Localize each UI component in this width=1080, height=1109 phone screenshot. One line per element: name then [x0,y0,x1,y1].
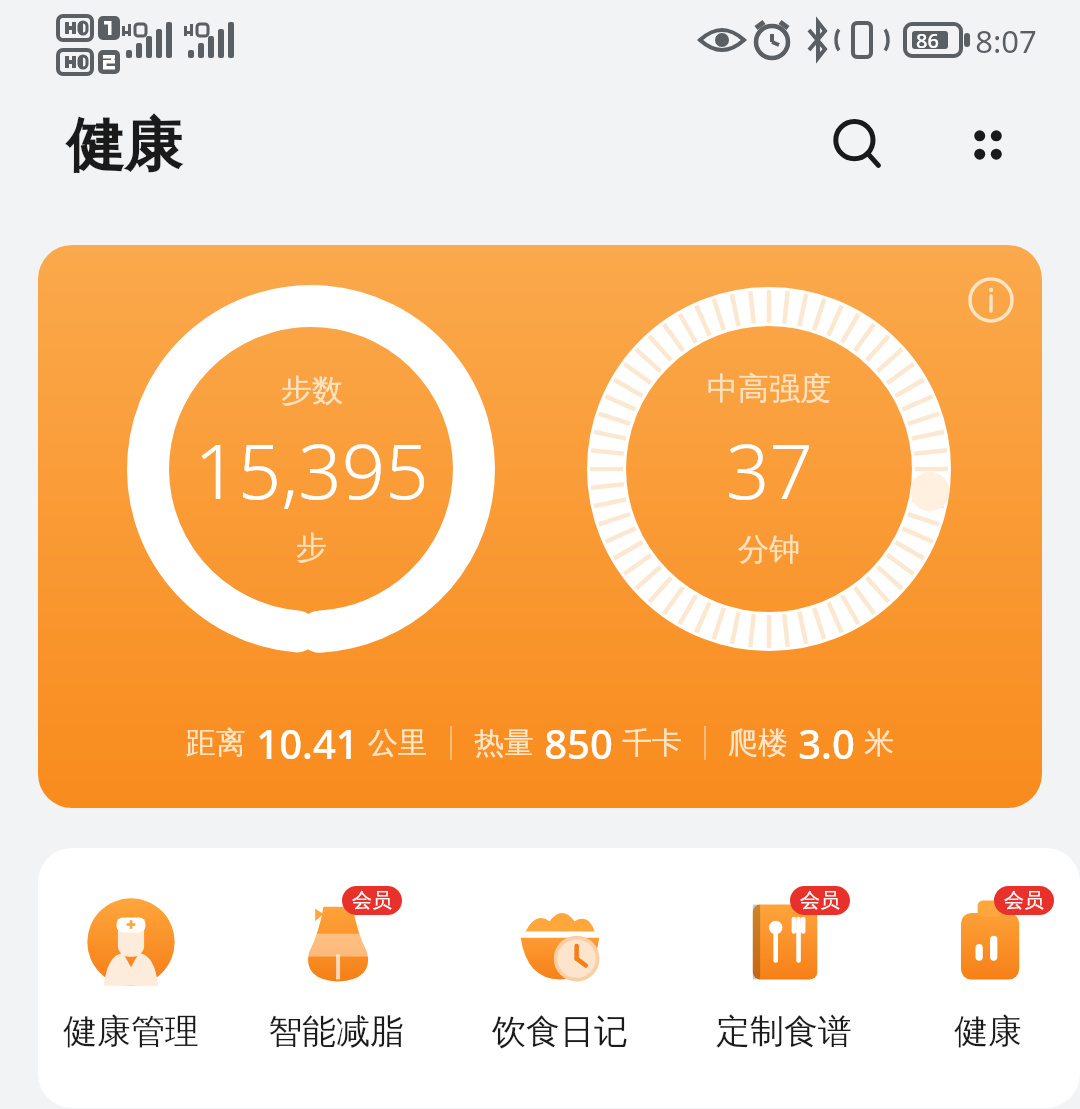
button[interactable]: 会员 [896,890,1080,1053]
button[interactable]: Search [816,103,900,187]
button[interactable]: 会员 [672,890,896,1053]
button[interactable]: More options [946,103,1030,187]
staticText: 10.41 [256,716,359,770]
staticText: 公里 [368,724,428,762]
button[interactable]: Info [962,271,1020,329]
button[interactable]: 会员 [224,890,448,1053]
staticText: 8:07 [975,20,1037,62]
staticText: 热量 [474,724,534,762]
staticText: 步数 [281,371,343,410]
staticText: 会员 [1004,888,1044,913]
staticText: 爬楼 [728,724,788,762]
staticText: 米 [864,724,894,762]
staticText: 850 [544,716,613,770]
staticText: 健康 [954,1010,1022,1053]
staticText: 步 [296,528,327,567]
staticText: 分钟 [738,530,800,569]
staticText: 3.0 [798,716,855,770]
staticText: 会员 [352,888,392,913]
staticText: 定制食谱 [716,1010,852,1053]
staticText: 千卡 [622,724,682,762]
staticText: 健康管理 [63,1010,199,1053]
staticText: 会员 [800,888,840,913]
staticText: 15,395 [194,418,429,522]
staticText: 中高强度 [707,369,831,408]
staticText: 距离 [186,724,246,762]
staticText: 饮食日记 [492,1010,628,1053]
button[interactable]: 饮食日记 [448,890,672,1053]
staticText: 智能减脂 [268,1010,404,1053]
button[interactable]: Info [38,245,1042,808]
button[interactable]: 健康管理 [38,890,224,1053]
staticText: 健康 [66,109,182,182]
staticText: 37 [726,418,813,522]
staticText: 86 [916,27,939,54]
